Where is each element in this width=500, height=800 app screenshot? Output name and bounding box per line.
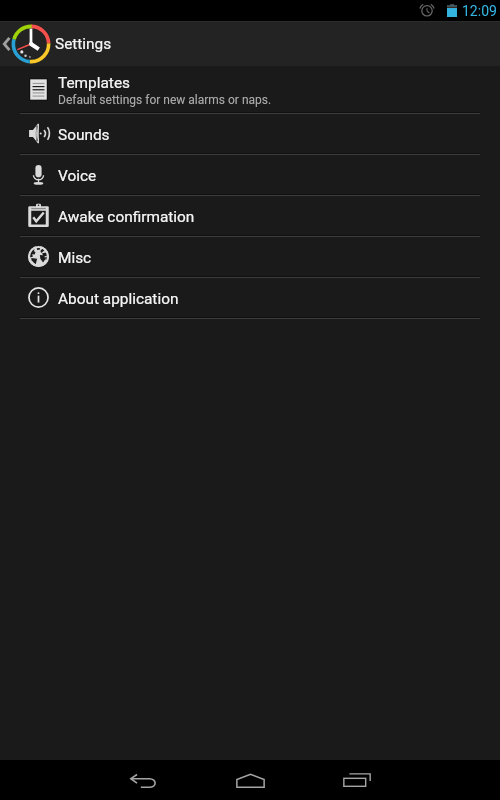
button[interactable]: Navigate up xyxy=(0,21,52,66)
staticText: Misc xyxy=(58,249,92,267)
staticText: About application xyxy=(58,290,179,308)
button[interactable]: About application xyxy=(0,278,500,317)
staticText: Awake confirmation xyxy=(58,208,195,226)
button[interactable]: Voice xyxy=(0,155,500,194)
staticText: Default settings for new alarms or naps. xyxy=(58,93,272,107)
staticText: Voice xyxy=(58,167,97,185)
button[interactable]: Back xyxy=(116,760,170,800)
staticText: 12:09 xyxy=(462,3,497,19)
button[interactable]: Recent apps xyxy=(330,760,384,800)
button[interactable]: Home xyxy=(223,760,277,800)
button[interactable]: Awake confirmation xyxy=(0,196,500,235)
button[interactable]: Misc xyxy=(0,237,500,276)
staticText: Templates xyxy=(58,74,130,92)
staticText: Sounds xyxy=(58,126,110,144)
button[interactable]: Templates xyxy=(0,66,500,112)
button[interactable]: Sounds xyxy=(0,114,500,153)
staticText: Settings xyxy=(55,35,112,53)
